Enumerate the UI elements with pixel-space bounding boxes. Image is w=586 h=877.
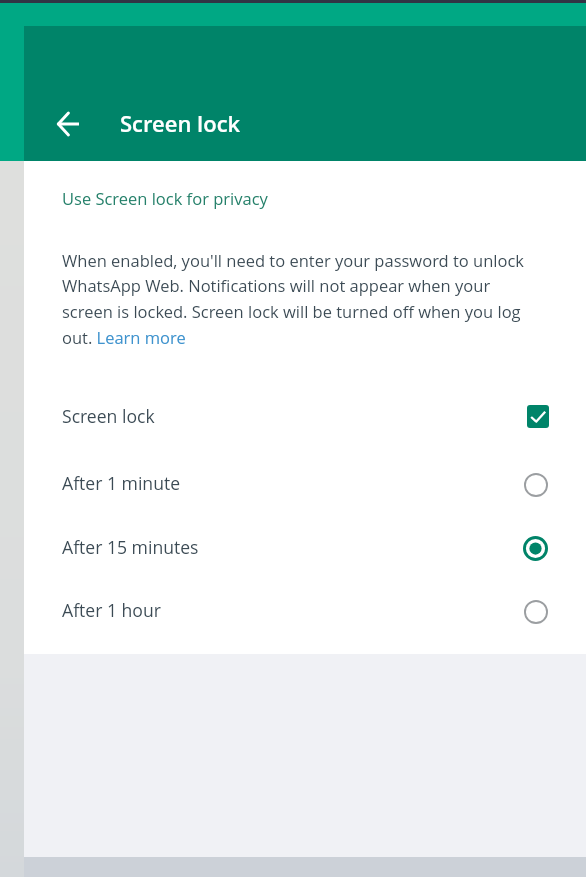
staticText: After 15 minutes <box>62 535 199 559</box>
staticText: After 1 hour <box>62 598 161 622</box>
staticText: Use Screen lock for privacy <box>62 187 268 209</box>
staticText: When enabled, you'll need to enter your … <box>62 249 534 349</box>
button[interactable]: Screen lock <box>24 384 586 448</box>
staticText: Screen lock <box>62 404 155 428</box>
button[interactable]: Back <box>43 99 92 148</box>
button[interactable]: After 1 minute <box>24 451 586 515</box>
button[interactable]: After 15 minutes <box>24 515 586 579</box>
staticText: After 1 minute <box>62 471 181 495</box>
button[interactable]: After 1 hour <box>24 578 586 642</box>
staticText: Screen lock <box>120 108 241 138</box>
